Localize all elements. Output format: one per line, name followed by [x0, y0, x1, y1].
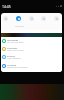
- staticText: Team sync 3 pm: [7, 49, 24, 52]
- staticText: New memory: [7, 57, 21, 60]
- staticText: Photos: [7, 54, 15, 57]
- staticText: Download complete: [7, 66, 28, 69]
- button[interactable]: Chrome: [2, 62, 61, 70]
- staticText: 14:45: [2, 4, 11, 9]
- staticText: Calendar: [7, 46, 18, 49]
- button[interactable]: Auto-rotate: [54, 16, 59, 21]
- button[interactable]: Bluetooth: [16, 16, 21, 21]
- staticText: Messages: [7, 38, 19, 41]
- staticText: Chrome: [7, 63, 17, 66]
- button[interactable]: Messages: [2, 37, 61, 45]
- button[interactable]: Flashlight: [41, 16, 46, 21]
- button[interactable]: Internet: [3, 16, 8, 21]
- button[interactable]: Calendar: [2, 45, 61, 53]
- button[interactable]: Do Not Disturb: [29, 16, 34, 21]
- staticText: Hi! Are you free?: [7, 41, 24, 44]
- button[interactable]: Photos: [2, 53, 61, 61]
- staticText: Manage: [15, 24, 25, 27]
- button[interactable]: Media player: [1, 33, 62, 37]
